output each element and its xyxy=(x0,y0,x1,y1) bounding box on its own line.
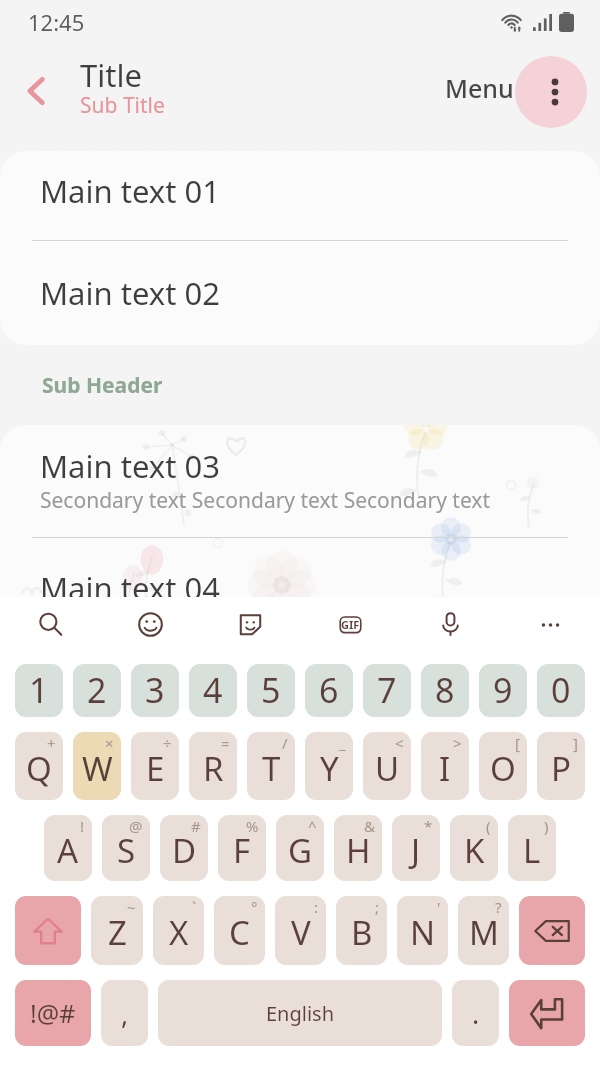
staticText: Main text 03 xyxy=(40,445,220,487)
staticText: : xyxy=(314,897,319,917)
button[interactable]: J xyxy=(392,815,440,881)
button[interactable]: GIF xyxy=(300,597,400,652)
staticText: ? xyxy=(495,897,502,917)
button[interactable]: Menu xyxy=(432,61,515,115)
button[interactable]: D xyxy=(160,815,208,881)
button[interactable]: Back xyxy=(9,64,65,120)
staticText: 2 xyxy=(87,667,107,713)
button[interactable]: 4 xyxy=(189,664,237,717)
button[interactable]: 1 xyxy=(15,664,63,717)
staticText: ( xyxy=(486,816,491,836)
button[interactable]: W xyxy=(73,732,121,800)
button[interactable]: T xyxy=(247,732,295,800)
staticText: , xyxy=(121,995,129,1032)
staticText: < xyxy=(395,733,404,753)
button[interactable]: Q xyxy=(15,732,63,800)
staticText: C xyxy=(229,910,250,955)
button[interactable]: G xyxy=(276,815,324,881)
button[interactable]: 5 xyxy=(247,664,295,717)
button[interactable]: S xyxy=(102,815,150,881)
staticText: K xyxy=(464,828,485,873)
button[interactable]: !@# xyxy=(15,980,91,1046)
staticText: D xyxy=(172,828,197,873)
staticText: 6 xyxy=(319,667,339,713)
button[interactable]: 0 xyxy=(537,664,585,717)
staticText: O xyxy=(490,746,516,791)
button[interactable]: Z xyxy=(91,896,143,965)
staticText: ÷ xyxy=(163,733,172,753)
button[interactable]: Sticker xyxy=(200,597,300,652)
button[interactable]: . xyxy=(452,980,499,1046)
staticText: × xyxy=(105,733,114,753)
staticText: J xyxy=(411,828,421,873)
button[interactable]: English xyxy=(158,980,442,1046)
staticText: ! xyxy=(80,816,85,836)
staticText: U xyxy=(375,746,400,791)
button[interactable]: F xyxy=(218,815,266,881)
button[interactable]: K xyxy=(450,815,498,881)
staticText: 1 xyxy=(29,667,49,713)
staticText: ° xyxy=(251,897,258,917)
button[interactable]: Enter xyxy=(509,980,585,1046)
staticText: 0 xyxy=(551,667,571,713)
button[interactable]: U xyxy=(363,732,411,800)
staticText: M xyxy=(469,910,499,955)
button[interactable]: V xyxy=(275,896,326,965)
button[interactable]: N xyxy=(397,896,448,965)
button[interactable]: X xyxy=(153,896,204,965)
staticText: ; xyxy=(375,897,380,917)
staticText: > xyxy=(453,733,462,753)
staticText: W xyxy=(82,746,113,791)
button[interactable]: Main text 01 xyxy=(0,151,600,240)
button[interactable]: H xyxy=(334,815,382,881)
staticText: ~ xyxy=(127,897,136,917)
staticText: _ xyxy=(339,733,346,753)
button[interactable]: C xyxy=(214,896,265,965)
button[interactable]: L xyxy=(508,815,556,881)
button[interactable]: I xyxy=(421,732,469,800)
staticText: X xyxy=(169,910,189,955)
button[interactable]: B xyxy=(336,896,387,965)
staticText: F xyxy=(233,828,251,873)
staticText: * xyxy=(424,816,433,836)
staticText: R xyxy=(203,746,224,791)
staticText: 12:45 xyxy=(28,7,85,37)
staticText: Main text 01 xyxy=(40,170,220,212)
staticText: Main text 02 xyxy=(40,272,220,314)
staticText: / xyxy=(282,733,288,753)
button[interactable]: Main text 04 xyxy=(0,538,600,638)
button[interactable]: 7 xyxy=(363,664,411,717)
button[interactable]: P xyxy=(537,732,585,800)
button[interactable]: Main text 02 xyxy=(0,241,600,345)
staticText: 9 xyxy=(493,667,513,713)
button[interactable]: 9 xyxy=(479,664,527,717)
button[interactable]: O xyxy=(479,732,527,800)
staticText: !@# xyxy=(30,996,76,1030)
button[interactable]: 2 xyxy=(73,664,121,717)
staticText: Sub Header xyxy=(42,371,163,400)
staticText: V xyxy=(291,910,311,955)
staticText: H xyxy=(346,828,371,873)
button[interactable]: Shift xyxy=(15,896,81,965)
staticText: Y xyxy=(320,746,339,791)
button[interactable]: , xyxy=(101,980,148,1046)
button[interactable]: Main text 03 xyxy=(0,425,600,537)
button[interactable]: Voice input xyxy=(400,597,500,652)
button[interactable]: Backspace xyxy=(519,896,585,965)
staticText: 7 xyxy=(377,667,397,713)
button[interactable]: Emoji xyxy=(100,597,200,652)
button[interactable]: R xyxy=(189,732,237,800)
button[interactable]: E xyxy=(131,732,179,800)
button[interactable]: A xyxy=(44,815,92,881)
button[interactable]: More options xyxy=(515,56,587,128)
button[interactable]: 8 xyxy=(421,664,469,717)
staticText: + xyxy=(47,733,56,753)
button[interactable]: 6 xyxy=(305,664,353,717)
staticText: P xyxy=(551,746,571,791)
staticText: G xyxy=(288,828,313,873)
button[interactable]: M xyxy=(458,896,509,965)
button[interactable]: Search xyxy=(0,597,100,652)
button[interactable]: More xyxy=(500,597,600,652)
button[interactable]: 3 xyxy=(131,664,179,717)
button[interactable]: Y xyxy=(305,732,353,800)
